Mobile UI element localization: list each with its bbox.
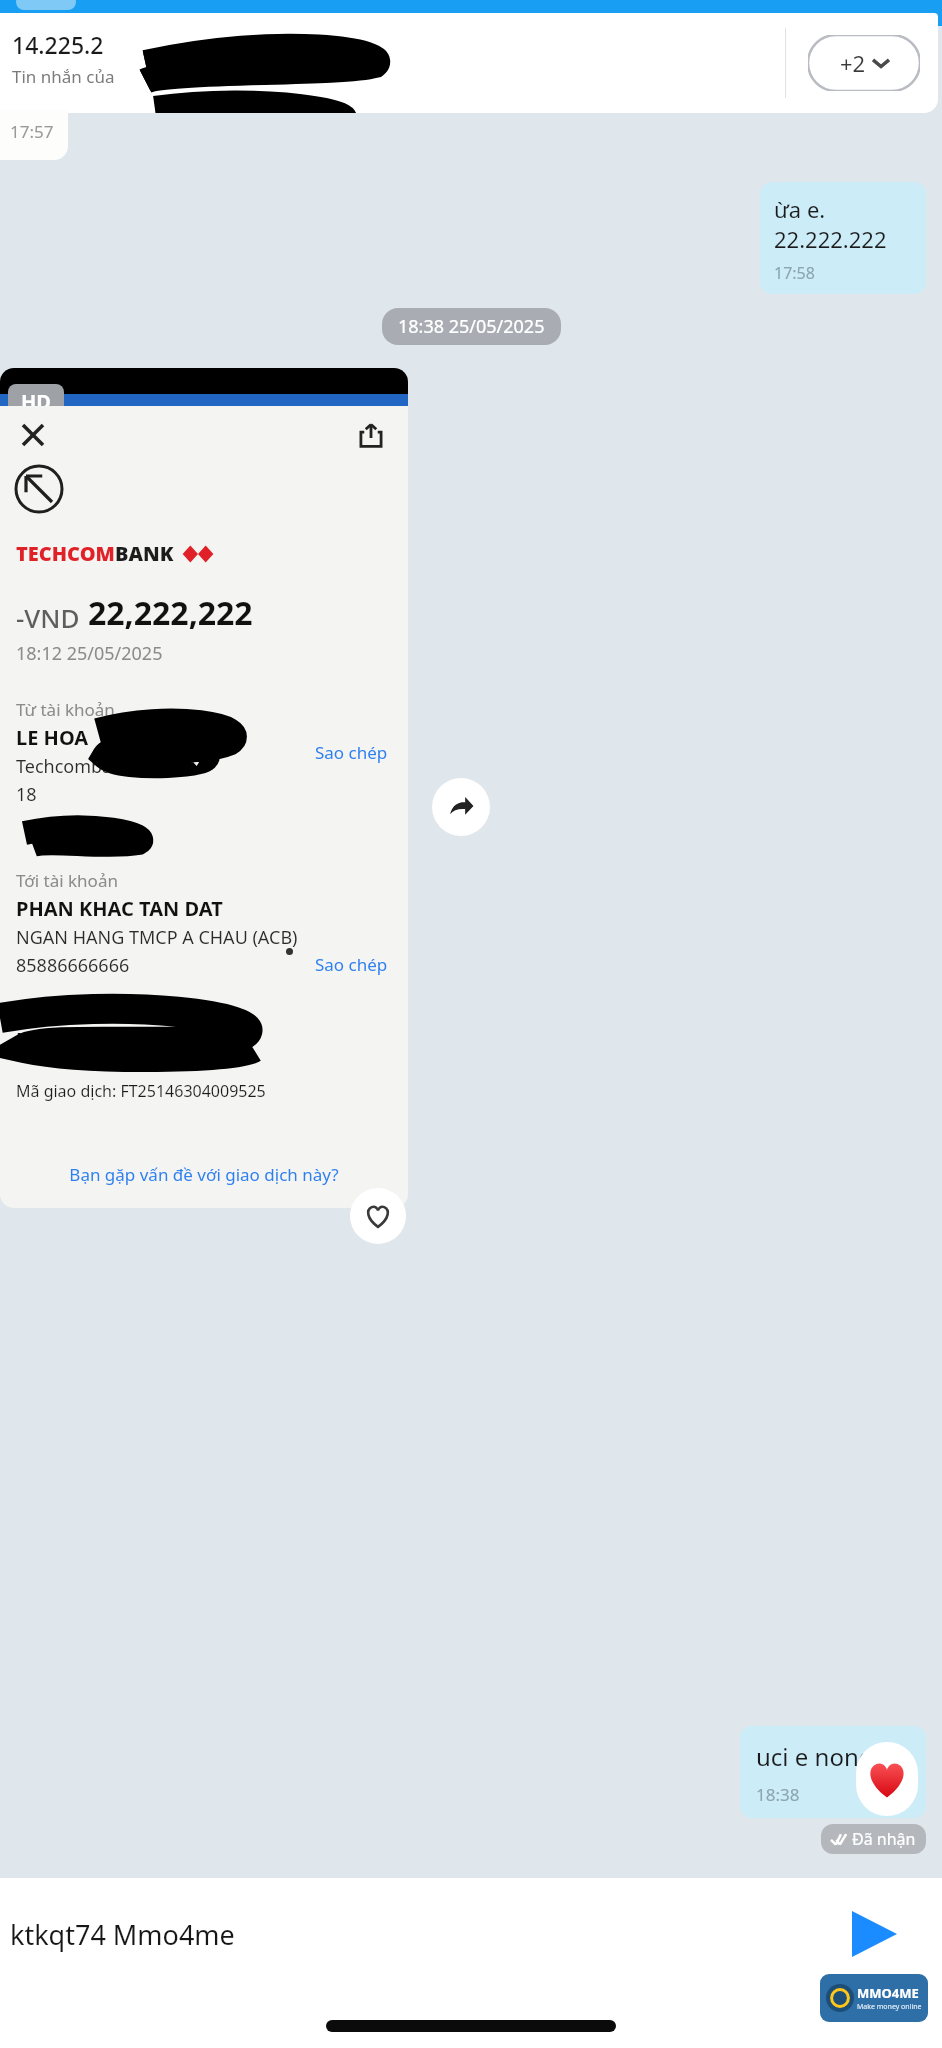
staticText: TECHCOM: [16, 540, 115, 567]
staticText: 18:12 25/05/2025: [16, 641, 163, 666]
staticText: 18: [16, 782, 37, 807]
button[interactable]: Sao chép: [315, 953, 388, 976]
staticText: Tin nhắn của: [12, 65, 115, 88]
button[interactable]: Chuyển tiếp: [432, 778, 490, 836]
staticText: LE HOA: [16, 724, 89, 751]
staticText: BANK: [115, 540, 174, 567]
staticText: 17:57: [10, 120, 54, 143]
staticText: 14.225.2: [12, 29, 104, 60]
button[interactable]: Quay lại: [14, 464, 64, 514]
button[interactable]: Sao chép: [315, 741, 388, 764]
button[interactable]: uci e nong: [740, 1726, 926, 1818]
button[interactable]: Bạn gặp vấn đề với giao dịch này?: [69, 1163, 339, 1186]
staticText: Make money online: [857, 2002, 922, 2012]
button[interactable]: ừa e. 22.222.222: [760, 182, 926, 294]
staticText: ừa e. 22.222.222: [774, 194, 912, 254]
staticText: 85886666666: [16, 953, 130, 978]
staticText: Từ tài khoản: [16, 698, 115, 721]
staticText: LE HOANG: [16, 1026, 119, 1053]
button[interactable]: Thả tim: [350, 1188, 406, 1244]
staticText: Mã giao dịch: FT25146304009525: [16, 1080, 266, 1102]
staticText: PHAN KHAC TAN DAT: [16, 895, 223, 922]
staticText: Đã nhận: [852, 1828, 916, 1850]
staticText: ktkqt74 Mmo4me: [10, 1916, 235, 1953]
staticText: 22,222,222: [88, 591, 253, 635]
button[interactable]: Gửi: [842, 1902, 906, 1966]
staticText: 18:38 25/05/2025: [398, 314, 545, 339]
staticText: NGAN HANG TMCP A CHAU (ACB): [16, 925, 298, 950]
button[interactable]: Đóng: [16, 418, 50, 452]
staticText: uci e nong: [756, 1740, 874, 1773]
staticText: +2: [840, 48, 866, 78]
staticText: Tới tài khoản: [16, 869, 118, 892]
staticText: HD: [21, 388, 51, 415]
staticText: Techcombank: [16, 754, 133, 779]
staticText: 18:38: [756, 1783, 800, 1806]
staticText: MMO4ME: [857, 1984, 919, 2002]
button[interactable]: +2: [808, 35, 920, 91]
button[interactable]: 14.225.2: [0, 13, 938, 113]
staticText: 17:58: [774, 262, 815, 284]
staticText: -VND: [16, 600, 80, 635]
button[interactable]: Chia sẻ: [354, 418, 388, 452]
